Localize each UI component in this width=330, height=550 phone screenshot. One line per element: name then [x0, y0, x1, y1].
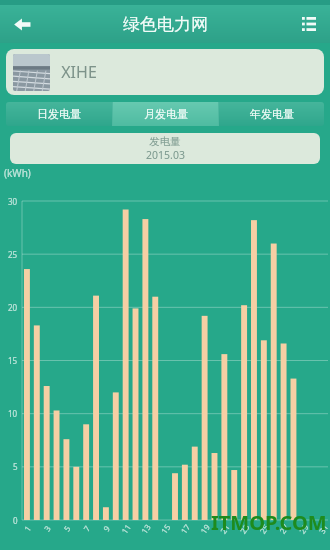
staticText: 2015.03: [146, 148, 185, 162]
button[interactable]: XIHE: [6, 49, 324, 95]
button[interactable]: 日发电量: [6, 102, 112, 126]
button[interactable]: 发电量: [10, 133, 320, 164]
staticText: 月发电量: [144, 107, 188, 121]
staticText: XIHE: [61, 61, 97, 83]
button[interactable]: Menu: [295, 10, 323, 38]
button[interactable]: 月发电量: [113, 102, 218, 126]
staticText: 发电量: [149, 135, 181, 148]
staticText: 绿色电力网: [123, 14, 208, 35]
staticText: 日发电量: [37, 107, 81, 121]
button[interactable]: 年发电量: [219, 102, 324, 126]
button[interactable]: Back: [5, 7, 39, 41]
staticText: 年发电量: [250, 107, 294, 121]
